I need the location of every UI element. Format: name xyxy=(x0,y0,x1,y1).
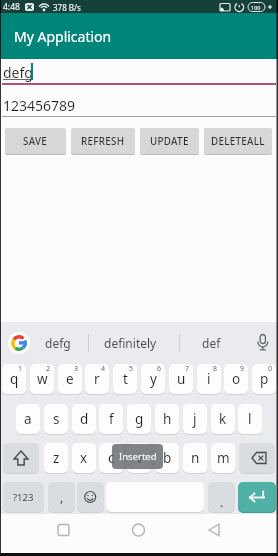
button[interactable]: m xyxy=(211,443,235,473)
button[interactable]: j xyxy=(183,404,207,434)
staticText: 8 xyxy=(213,364,218,374)
button[interactable]: n xyxy=(183,443,207,473)
button[interactable]: q xyxy=(2,364,26,394)
staticText: f xyxy=(109,410,114,428)
staticText: c xyxy=(108,449,115,467)
button[interactable] xyxy=(239,443,275,473)
staticText: r xyxy=(94,370,100,388)
button[interactable] xyxy=(208,482,235,512)
staticText: ?123 xyxy=(13,491,34,504)
button[interactable]: SAVE xyxy=(5,128,66,154)
staticText: Inserted xyxy=(119,450,157,463)
staticText: 2 xyxy=(46,364,51,374)
button[interactable]: h xyxy=(155,404,179,434)
button[interactable]: c xyxy=(99,443,123,473)
staticText: 9 xyxy=(240,364,245,374)
staticText: q xyxy=(10,370,19,388)
staticText: l xyxy=(248,410,252,428)
button[interactable] xyxy=(3,482,44,512)
button[interactable]: defg xyxy=(0,59,278,85)
staticText: definitely xyxy=(104,335,157,351)
staticText: 123456789 xyxy=(3,96,76,115)
staticText: 7 xyxy=(185,364,190,374)
button[interactable]: DELETEALL xyxy=(204,128,272,154)
staticText: defg xyxy=(3,63,33,82)
button[interactable]: UPDATE xyxy=(140,128,199,154)
staticText: k xyxy=(219,410,227,428)
button[interactable]: definitely xyxy=(95,330,165,356)
staticText: . xyxy=(220,494,224,510)
staticText: h xyxy=(163,410,172,428)
button[interactable]: z xyxy=(44,443,68,473)
button[interactable]: , xyxy=(48,482,75,512)
staticText: defg xyxy=(45,335,71,351)
staticText: 378 B/s xyxy=(53,2,81,13)
staticText: 5 xyxy=(129,364,134,374)
button[interactable]: e xyxy=(58,364,82,394)
button[interactable]: a xyxy=(16,404,40,434)
button[interactable]: b xyxy=(155,443,179,473)
staticText: g xyxy=(135,410,144,428)
button[interactable] xyxy=(238,482,276,512)
button[interactable]: t xyxy=(113,364,137,394)
staticText: d xyxy=(80,410,89,428)
button[interactable] xyxy=(50,517,78,545)
button[interactable] xyxy=(200,517,228,545)
button[interactable]: l xyxy=(238,404,262,434)
button[interactable]: r xyxy=(85,364,109,394)
staticText: 1 xyxy=(18,364,23,374)
button[interactable] xyxy=(252,330,274,356)
button[interactable] xyxy=(3,443,39,473)
staticText: x xyxy=(80,449,88,467)
staticText: u xyxy=(177,370,186,388)
staticText: z xyxy=(53,449,60,467)
button[interactable]: k xyxy=(211,404,235,434)
button[interactable]: f xyxy=(99,404,123,434)
staticText: m xyxy=(217,449,230,467)
button[interactable]: g xyxy=(127,404,151,434)
button[interactable] xyxy=(8,332,30,354)
staticText: My Application xyxy=(14,27,112,46)
staticText: def xyxy=(202,335,221,351)
staticText: y xyxy=(150,370,157,388)
button[interactable]: x xyxy=(72,443,96,473)
button[interactable]: w xyxy=(30,364,54,394)
staticText: 4 xyxy=(101,364,106,374)
staticText: e xyxy=(66,370,74,388)
button[interactable]: def xyxy=(190,330,232,356)
staticText: p xyxy=(260,370,269,388)
staticText: 0 xyxy=(268,364,273,374)
staticText: 3 xyxy=(74,364,79,374)
button[interactable] xyxy=(77,482,104,512)
button[interactable]: 123456789 xyxy=(0,92,278,118)
staticText: b xyxy=(163,449,172,467)
button[interactable]: y xyxy=(141,364,165,394)
staticText: j xyxy=(193,410,197,428)
button[interactable]: u xyxy=(169,364,193,394)
staticText: UPDATE xyxy=(150,135,189,148)
staticText: w xyxy=(37,370,48,388)
button[interactable]: p xyxy=(252,364,276,394)
button[interactable]: d xyxy=(72,404,96,434)
staticText: i xyxy=(207,370,211,388)
button[interactable] xyxy=(125,517,153,545)
staticText: SAVE xyxy=(23,135,48,148)
button[interactable]: REFRESH xyxy=(71,128,135,154)
button[interactable]: s xyxy=(44,404,68,434)
button[interactable]: defg xyxy=(36,330,80,356)
button[interactable]: v xyxy=(127,443,151,473)
staticText: DELETEALL xyxy=(211,135,265,148)
button[interactable]: i xyxy=(197,364,221,394)
button[interactable]: o xyxy=(224,364,248,394)
staticText: REFRESH xyxy=(81,135,125,148)
staticText: n xyxy=(191,449,200,467)
staticText: 100 xyxy=(251,4,261,11)
staticText: v xyxy=(136,449,143,467)
staticText: , xyxy=(60,489,64,505)
staticText: o xyxy=(232,370,241,388)
staticText: t xyxy=(123,370,128,388)
staticText: 6 xyxy=(157,364,162,374)
staticText: a xyxy=(24,410,32,428)
staticText: s xyxy=(53,410,60,428)
